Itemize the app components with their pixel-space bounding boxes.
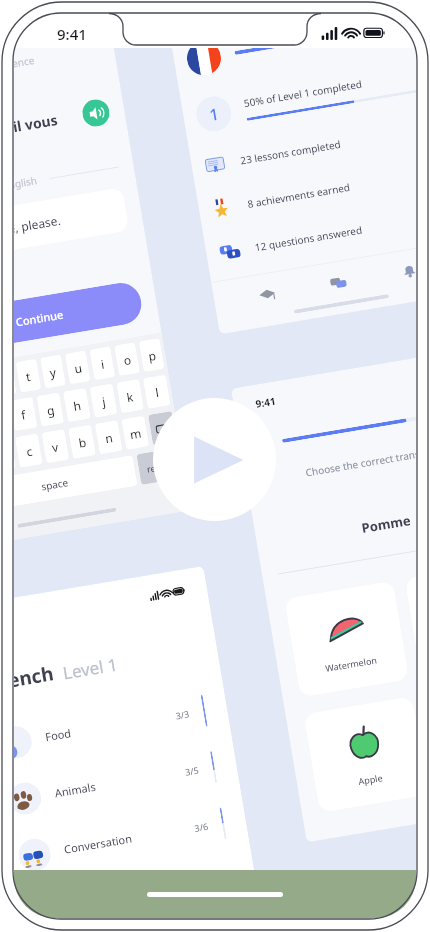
staticText: 3/5 — [184, 764, 200, 778]
button[interactable]: Learn — [245, 272, 289, 316]
button[interactable]: c — [15, 433, 43, 468]
button[interactable]: 12 questions answered — [218, 205, 416, 264]
staticText: Apple — [357, 771, 384, 787]
staticText: 23 lessons completed — [239, 137, 342, 167]
staticText: Sentence — [14, 53, 36, 74]
staticText: 9:41 — [254, 394, 276, 411]
staticText: j — [101, 393, 107, 409]
staticText: i — [100, 355, 106, 372]
staticText: English — [14, 173, 39, 193]
button[interactable]: t — [15, 359, 41, 393]
button[interactable]: x — [14, 438, 16, 472]
button[interactable]: u — [65, 350, 91, 384]
staticText: o — [122, 351, 133, 368]
staticText: Animals — [53, 779, 97, 800]
button[interactable]: p — [139, 338, 165, 372]
staticText: f — [20, 406, 27, 423]
staticText: 9:41 — [57, 24, 87, 44]
staticText: Food — [44, 725, 72, 744]
button[interactable]: Alerts — [387, 248, 416, 292]
staticText: Coffee, please. — [14, 212, 62, 241]
staticText: 1 — [208, 103, 221, 126]
button[interactable]: Animals — [14, 738, 219, 829]
button[interactable]: Apple — [303, 696, 416, 813]
button[interactable]: m — [121, 416, 149, 450]
button[interactable]: i — [89, 346, 115, 380]
button[interactable]: Coffee, please. — [14, 187, 129, 266]
staticText: l — [154, 384, 161, 400]
staticText: n — [104, 429, 114, 446]
staticText: S'il vous — [14, 110, 59, 138]
button[interactable]: Orange — [405, 561, 416, 677]
staticText: Conversation — [63, 830, 133, 857]
staticText: Continue — [15, 307, 64, 329]
staticText: return — [146, 458, 174, 475]
button[interactable]: Play audio — [80, 97, 111, 128]
button[interactable]: space — [14, 455, 137, 513]
staticText: 50% of Level 1 completed — [243, 76, 363, 110]
staticText: h — [72, 397, 83, 414]
staticText: Level 1 — [61, 653, 119, 684]
button[interactable]: Watermelon — [284, 581, 409, 697]
button[interactable]: Conversation — [14, 794, 229, 885]
staticText: French — [14, 660, 56, 697]
button[interactable]: Play video — [153, 398, 276, 521]
button[interactable]: j — [90, 383, 117, 418]
button[interactable]: n — [95, 420, 123, 454]
staticText: c — [25, 443, 34, 459]
button[interactable]: k — [116, 379, 144, 413]
button[interactable]: g — [36, 392, 64, 427]
button[interactable]: l — [143, 374, 171, 409]
staticText: 12 questions answered — [254, 222, 364, 254]
button[interactable]: Continue — [14, 280, 144, 357]
staticText: u — [73, 359, 83, 376]
button[interactable]: Food — [14, 682, 210, 772]
button[interactable]: o — [114, 342, 140, 376]
button[interactable]: Library — [316, 260, 360, 304]
staticText: space — [40, 475, 69, 493]
staticText: y — [48, 364, 58, 380]
staticText: v — [51, 438, 60, 455]
button[interactable]: return — [136, 447, 183, 485]
staticText: Pomme — [360, 511, 412, 537]
button[interactable]: 8 achievments earned — [210, 162, 416, 221]
staticText: k — [125, 388, 135, 405]
button[interactable]: v — [41, 429, 69, 463]
staticText: 3/6 — [193, 820, 209, 834]
staticText: Watermelon — [324, 653, 378, 674]
button[interactable]: r — [14, 363, 17, 397]
staticText: Choose the correct translation — [304, 442, 416, 479]
staticText: m — [129, 424, 143, 442]
button[interactable]: h — [63, 388, 91, 422]
button[interactable]: Backspace — [148, 411, 177, 445]
staticText: g — [46, 401, 56, 418]
staticText: t — [25, 368, 32, 384]
button[interactable]: f — [14, 397, 37, 431]
staticText: b — [77, 434, 88, 451]
staticText: 3/3 — [175, 707, 190, 721]
button[interactable]: 23 lessons completed — [203, 119, 416, 177]
staticText: p — [147, 347, 157, 364]
button[interactable]: b — [68, 424, 96, 459]
button[interactable]: y — [40, 354, 66, 388]
staticText: 8 achievments earned — [246, 180, 351, 211]
